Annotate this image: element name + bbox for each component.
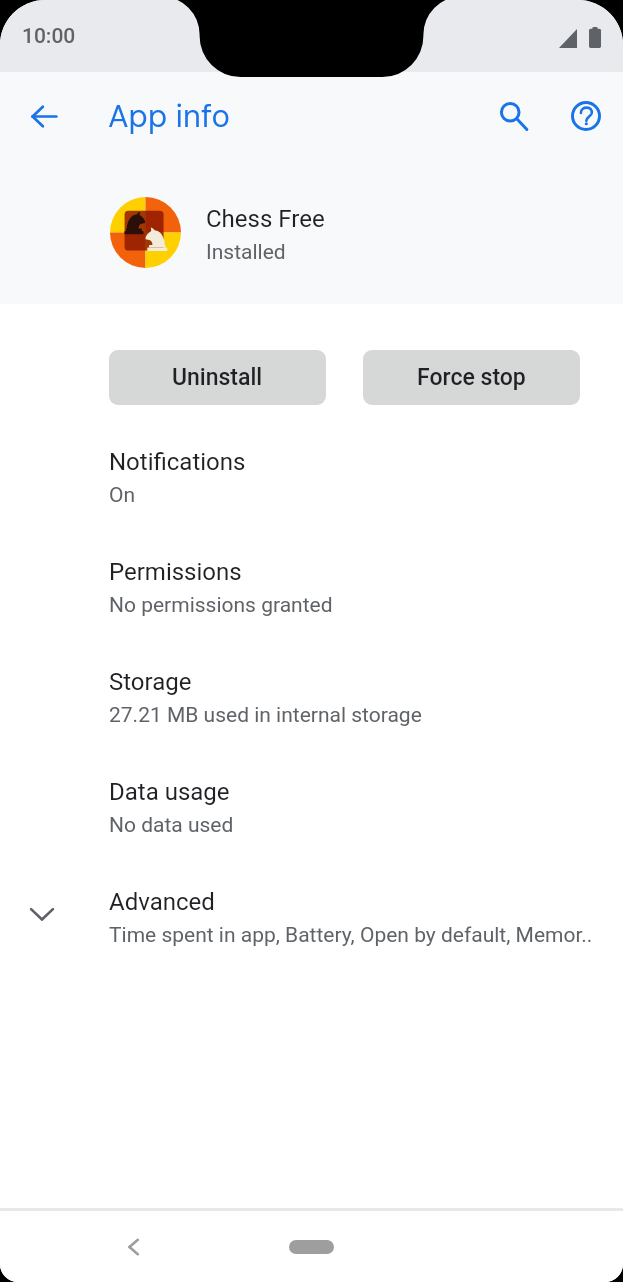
staticText: App info [108, 96, 230, 136]
button[interactable]: Home [289, 1240, 334, 1254]
staticText: Advanced [109, 888, 215, 916]
button[interactable]: Chess Free [0, 160, 623, 304]
staticText: Time spent in app, Battery, Open by defa… [109, 923, 593, 948]
button[interactable]: Back [112, 1225, 156, 1269]
button[interactable]: Data usage [0, 752, 623, 862]
button[interactable]: Advanced [0, 862, 623, 972]
button[interactable]: Uninstall [109, 350, 326, 405]
staticText: Notifications [109, 448, 246, 476]
button[interactable]: Storage [0, 642, 623, 752]
staticText: 27.21 MB used in internal storage [109, 703, 422, 728]
button[interactable]: Permissions [0, 532, 623, 642]
staticText: 10:00 [22, 24, 76, 49]
button[interactable]: Force stop [363, 350, 580, 405]
staticText: No permissions granted [109, 593, 333, 618]
staticText: Data usage [109, 778, 230, 806]
staticText: Uninstall [172, 364, 263, 391]
button[interactable]: Help [560, 90, 612, 142]
button[interactable]: Search [488, 90, 540, 142]
staticText: Force stop [417, 364, 526, 391]
staticText: On [109, 483, 136, 508]
staticText: No data used [109, 813, 234, 838]
button[interactable]: Notifications [0, 422, 623, 532]
staticText: Permissions [109, 558, 242, 586]
button[interactable]: Back [20, 92, 68, 140]
staticText: Installed [206, 240, 286, 265]
staticText: Storage [109, 668, 192, 696]
staticText: Chess Free [206, 205, 325, 233]
